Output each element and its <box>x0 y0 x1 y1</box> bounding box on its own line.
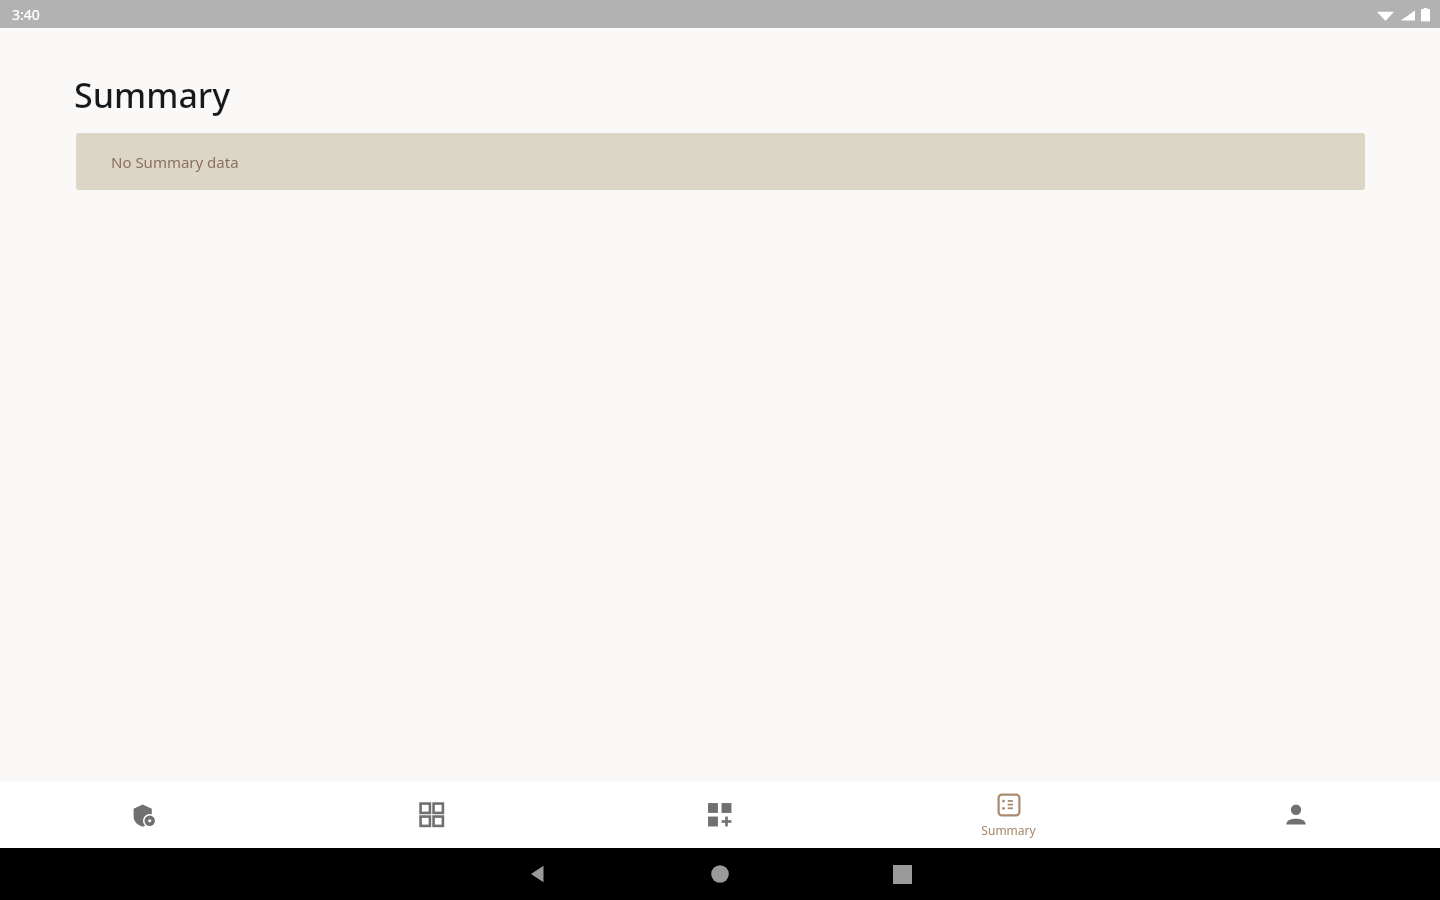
button[interactable]: Back <box>527 863 549 885</box>
button[interactable]: Summary <box>864 782 1152 848</box>
staticText: No Summary data <box>111 152 239 172</box>
button[interactable]: No Summary data <box>76 133 1365 190</box>
staticText: Summary <box>74 72 231 118</box>
button[interactable]: Profile <box>1152 782 1440 848</box>
staticText: Summary <box>981 822 1036 838</box>
staticText: 3:40 <box>12 5 40 24</box>
button[interactable]: Add widget <box>576 782 864 848</box>
button[interactable]: Security <box>0 782 288 848</box>
button[interactable]: Home <box>710 864 730 884</box>
button[interactable]: Scan code <box>288 782 576 848</box>
